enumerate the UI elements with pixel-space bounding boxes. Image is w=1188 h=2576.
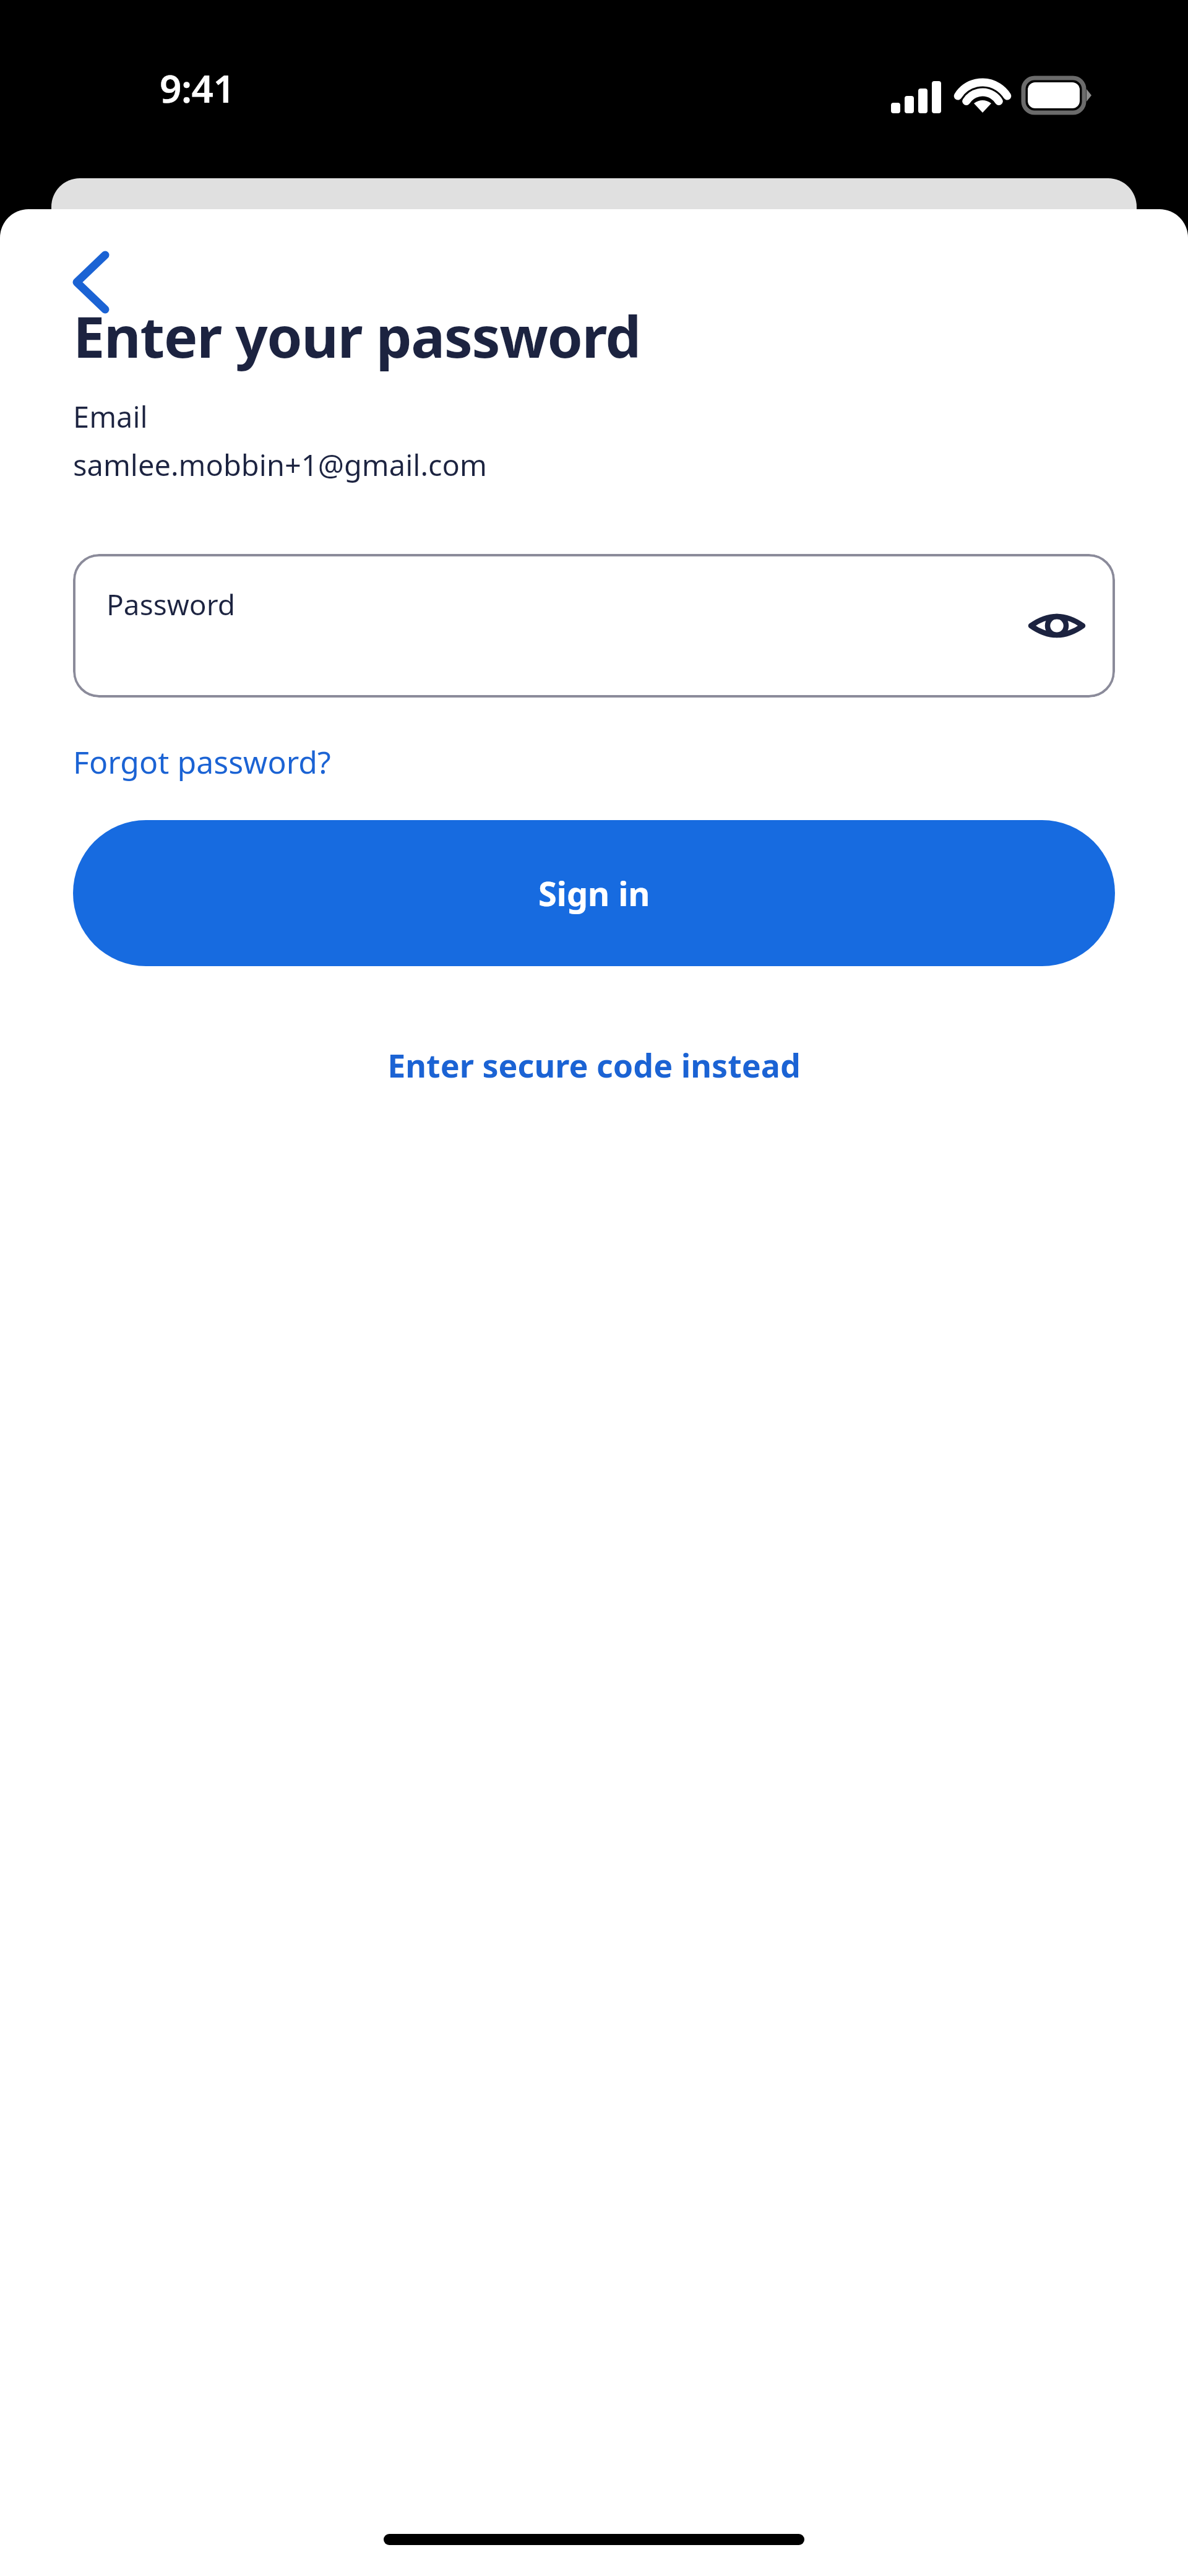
button[interactable]: Back <box>52 244 129 321</box>
staticText: Sign in <box>538 870 650 916</box>
staticText: Password <box>106 585 236 624</box>
staticText: Email <box>73 397 148 436</box>
button[interactable]: Sign in <box>73 820 1115 966</box>
staticText: samlee.mobbin+1@gmail.com <box>73 445 487 485</box>
staticText: Enter your password <box>73 297 640 374</box>
button[interactable]: Forgot password? <box>73 741 331 783</box>
button[interactable]: Show password <box>1023 592 1090 659</box>
staticText: Forgot password? <box>73 741 331 783</box>
staticText: Enter secure code instead <box>387 1043 801 1087</box>
button[interactable]: Password <box>73 554 1115 698</box>
staticText: 9:41 <box>160 62 235 114</box>
button[interactable]: Enter secure code instead <box>363 1032 825 1098</box>
